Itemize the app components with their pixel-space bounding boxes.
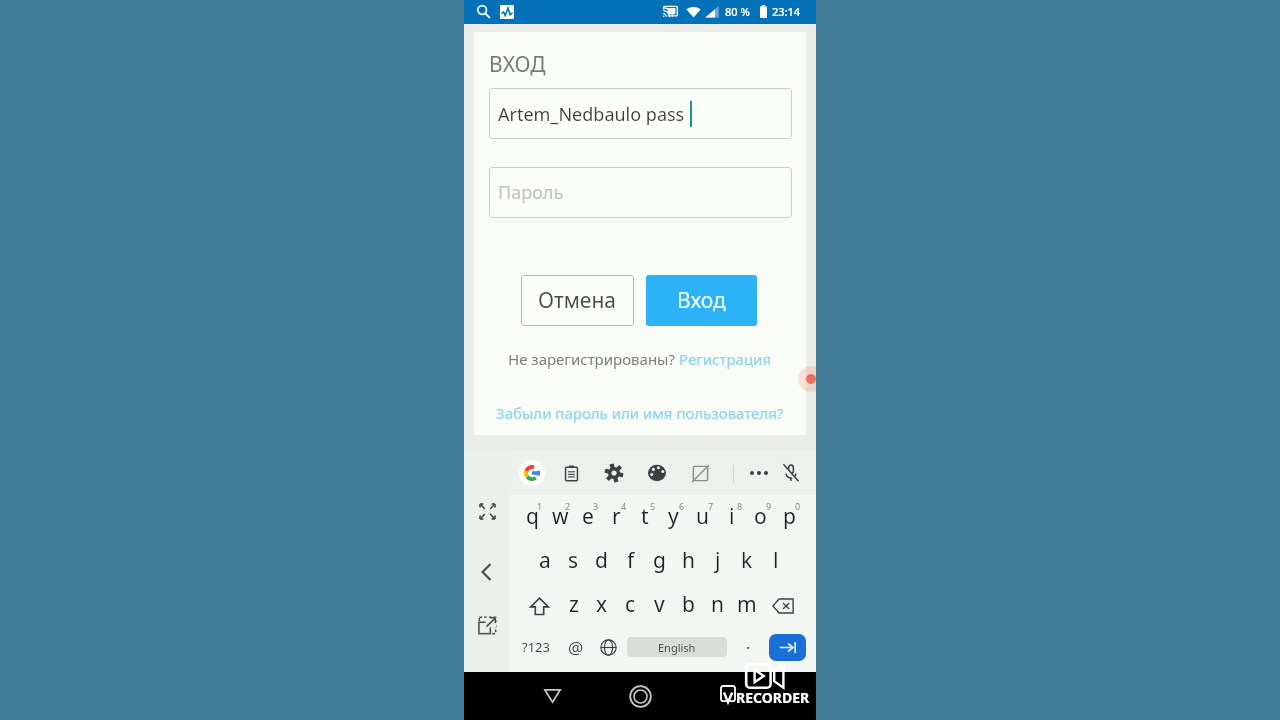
button[interactable]: a	[531, 540, 559, 584]
button[interactable]: Next	[769, 634, 806, 661]
staticText: 4	[621, 500, 627, 512]
button[interactable]: @	[562, 625, 590, 669]
staticText: j	[715, 546, 721, 575]
button[interactable]: s	[559, 540, 587, 584]
button[interactable]: k	[732, 540, 761, 584]
staticText: e	[582, 502, 594, 531]
button[interactable]: j	[703, 540, 732, 584]
button[interactable]: Отмена	[521, 275, 634, 326]
staticText: l	[773, 546, 779, 575]
staticText: 2	[565, 500, 571, 512]
button[interactable]: Пароль	[489, 167, 792, 218]
button[interactable]: Resize keyboard	[471, 495, 503, 527]
button[interactable]: .	[727, 625, 769, 669]
staticText: i	[729, 502, 735, 531]
button[interactable]: More options	[747, 461, 771, 485]
staticText: 9	[766, 500, 772, 512]
staticText: 80 %	[725, 4, 750, 19]
staticText: f	[627, 546, 635, 575]
button[interactable]: Home	[620, 672, 660, 720]
staticText: Пароль	[498, 180, 564, 205]
staticText: r	[612, 502, 621, 531]
staticText: 3	[593, 500, 599, 512]
button[interactable]: d	[587, 540, 616, 584]
button[interactable]: Voice input disabled	[779, 461, 803, 485]
button[interactable]: Floating keyboard	[470, 608, 504, 642]
staticText: .	[746, 632, 751, 654]
button[interactable]: c	[616, 584, 645, 628]
button[interactable]: f	[616, 540, 645, 584]
button[interactable]: 4	[602, 495, 630, 540]
button[interactable]: Google	[519, 460, 545, 486]
staticText: 5	[650, 500, 656, 512]
staticText: b	[682, 590, 695, 619]
button[interactable]: Вход	[646, 275, 757, 326]
button[interactable]: z	[560, 584, 588, 628]
staticText: Artem_Nedbaulo pass	[498, 102, 685, 127]
staticText: o	[754, 502, 767, 531]
staticText: t	[641, 502, 649, 531]
staticText: English	[658, 640, 696, 655]
button[interactable]: ?123	[509, 625, 562, 669]
button[interactable]: 2	[546, 495, 574, 540]
button[interactable]: g	[645, 540, 674, 584]
staticText: Вход	[677, 286, 726, 315]
button[interactable]: 6	[659, 495, 688, 540]
button[interactable]: v	[645, 584, 674, 628]
button[interactable]: b	[674, 584, 703, 628]
button[interactable]: Backspace	[761, 584, 804, 628]
staticText: v	[654, 590, 665, 619]
button[interactable]: 1	[518, 495, 546, 540]
staticText: y	[668, 502, 679, 531]
staticText: g	[653, 546, 666, 575]
button[interactable]: Забыли пароль или имя пользователя?	[496, 403, 784, 423]
button[interactable]: 8	[717, 495, 746, 540]
staticText: q	[526, 502, 539, 531]
staticText: w	[552, 502, 569, 531]
staticText: u	[696, 502, 709, 531]
staticText: 23:14	[772, 4, 801, 19]
staticText: a	[539, 546, 551, 575]
button[interactable]: l	[761, 540, 790, 584]
staticText: c	[625, 590, 636, 619]
staticText: m	[737, 590, 757, 619]
staticText: z	[569, 590, 579, 619]
button[interactable]: English	[627, 637, 727, 657]
staticText: 0	[795, 500, 801, 512]
button[interactable]: 9	[746, 495, 775, 540]
button[interactable]: 7	[688, 495, 717, 540]
button[interactable]: 5	[630, 495, 659, 540]
button[interactable]: 0	[775, 495, 804, 540]
staticText: Не зарегистрированы?	[508, 349, 679, 369]
button[interactable]: Settings	[602, 461, 626, 485]
staticText: s	[568, 546, 579, 575]
button[interactable]: Sticker	[688, 461, 712, 485]
staticText: ВХОД	[489, 50, 546, 79]
button[interactable]: Back	[469, 554, 505, 590]
staticText: 8	[737, 500, 743, 512]
button[interactable]: x	[588, 584, 616, 628]
button[interactable]: Регистрация	[679, 349, 772, 369]
button[interactable]: Change language	[590, 625, 627, 669]
staticText: 1	[537, 500, 543, 512]
staticText: x	[596, 590, 608, 619]
staticText: k	[741, 546, 753, 575]
button[interactable]: 3	[574, 495, 602, 540]
button[interactable]: Clipboard	[559, 461, 583, 485]
button[interactable]: Artem_Nedbaulo pass	[489, 88, 792, 139]
button[interactable]: Back	[532, 672, 572, 720]
staticText: 7	[708, 500, 714, 512]
staticText: Отмена	[538, 286, 617, 315]
staticText: h	[682, 546, 695, 575]
staticText: RECORDER	[736, 688, 810, 707]
button[interactable]: h	[674, 540, 703, 584]
button[interactable]: Themes	[645, 461, 669, 485]
staticText: d	[595, 546, 608, 575]
staticText: p	[783, 502, 796, 531]
staticText: @	[568, 636, 584, 659]
staticText: 6	[679, 500, 685, 512]
button[interactable]: m	[732, 584, 761, 628]
staticText: ?123	[522, 638, 550, 656]
button[interactable]: Shift	[518, 584, 560, 628]
button[interactable]: n	[703, 584, 732, 628]
